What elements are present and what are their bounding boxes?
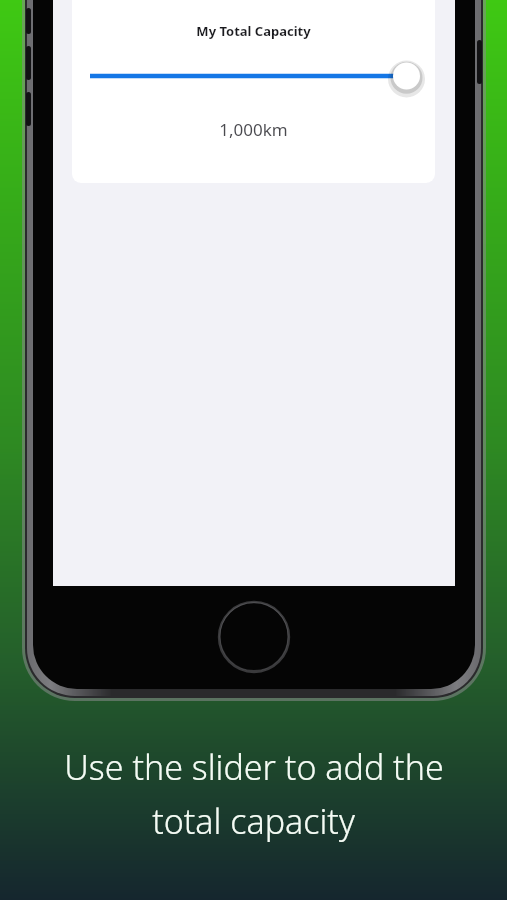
staticText: Use the slider to add the — [64, 744, 444, 790]
staticText: My Total Capacity — [196, 22, 311, 40]
staticText: 1,000km — [219, 118, 288, 141]
button[interactable]: My total capacity slider — [90, 58, 417, 94]
staticText: total capacity — [152, 798, 355, 844]
